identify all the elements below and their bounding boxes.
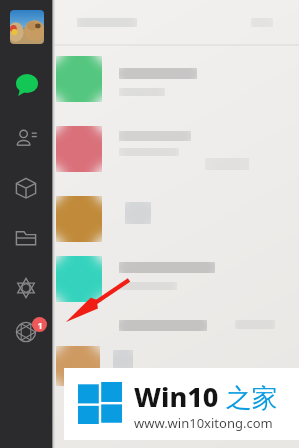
button[interactable]: Moments [14, 320, 38, 344]
button[interactable]: Apps [14, 276, 38, 300]
staticText: 之家 [219, 379, 278, 415]
staticText: 1 [37, 319, 43, 331]
staticText: Win10 [134, 378, 219, 415]
button[interactable]: Contacts [14, 126, 38, 150]
button[interactable]: Chats [16, 74, 38, 96]
button[interactable]: Workspace [14, 176, 38, 200]
button[interactable]: Files [14, 226, 38, 250]
staticText: www.win10xitong.com [134, 414, 273, 432]
button[interactable]: Profile [10, 10, 44, 44]
